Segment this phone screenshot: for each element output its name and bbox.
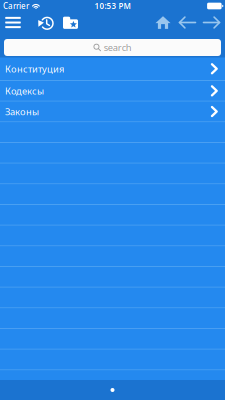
button[interactable]: Bookmarks — [62, 12, 79, 33]
button[interactable]: History — [37, 12, 54, 33]
button[interactable]: Конституция — [0, 57, 225, 80]
button[interactable]: Законы — [0, 102, 225, 121]
button[interactable]: Кодексы — [0, 81, 225, 101]
button[interactable]: Home — [154, 12, 172, 33]
button[interactable]: Forward — [202, 12, 221, 33]
button[interactable]: Back — [178, 12, 197, 33]
staticText: Конституция — [5, 63, 64, 75]
staticText: Кодексы — [5, 85, 44, 97]
staticText: Законы — [5, 105, 39, 118]
button[interactable]: search — [4, 39, 221, 56]
staticText: search — [104, 41, 132, 54]
staticText: 10:53 PM — [94, 1, 130, 11]
button[interactable]: Menu — [2, 12, 24, 33]
staticText: Carrier — [3, 1, 29, 11]
